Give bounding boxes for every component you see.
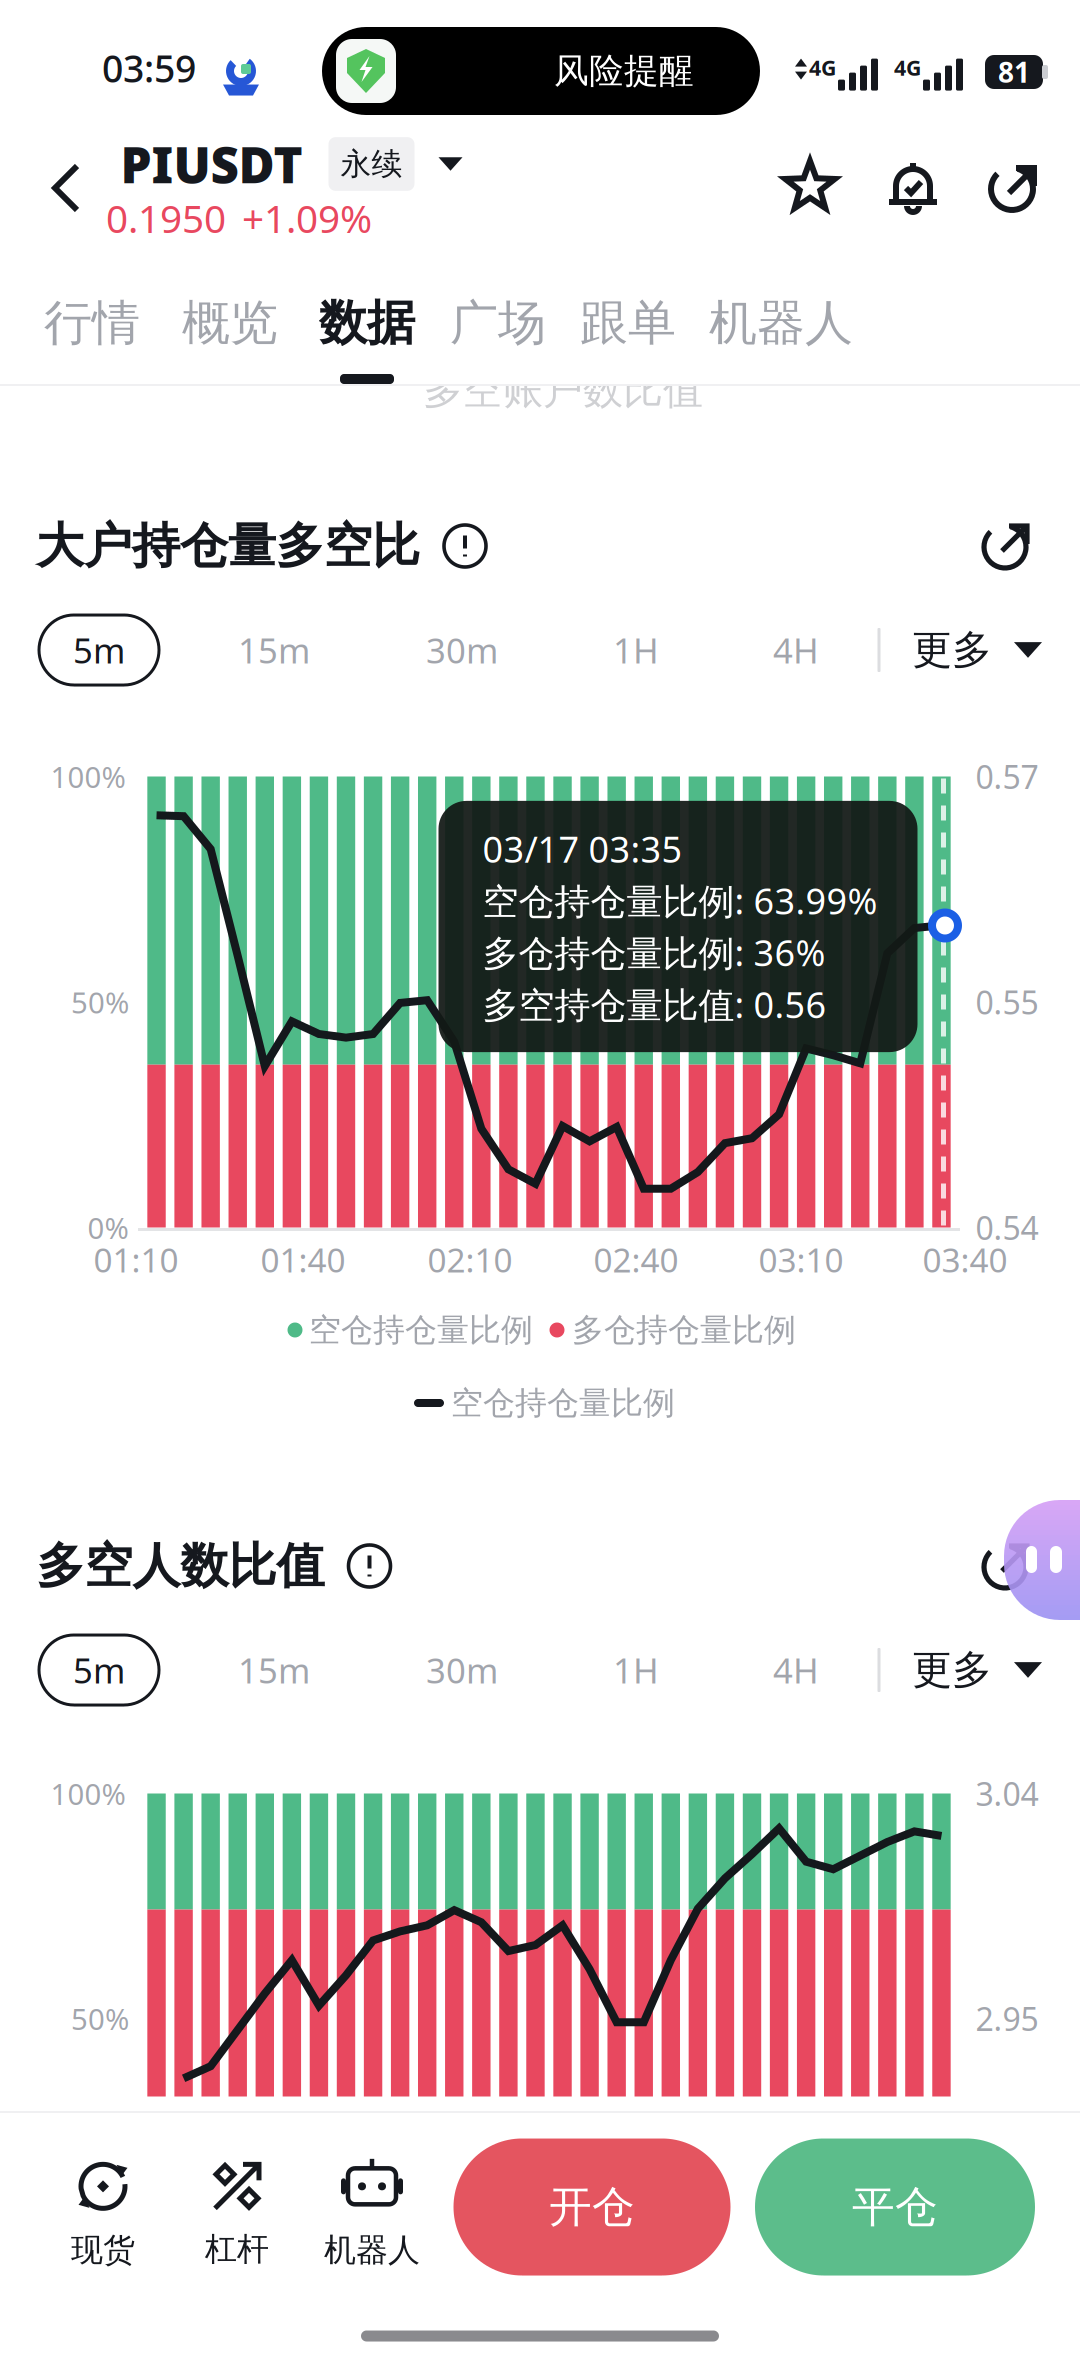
staticText: 15m <box>238 627 310 673</box>
staticText: 3.04 <box>975 1772 1038 1815</box>
staticText: 5m <box>73 1647 125 1693</box>
button[interactable]: 返回 <box>18 130 114 246</box>
staticText: 4H <box>773 1647 819 1693</box>
staticText: 多空持仓量比值: 0.56 <box>482 980 826 1028</box>
staticText: 机器人 <box>709 293 853 352</box>
button[interactable]: 机器人 <box>689 275 873 371</box>
staticText: 81 <box>998 53 1030 91</box>
button[interactable]: 悬浮助手 <box>1004 1500 1080 1620</box>
staticText: 4G <box>809 53 836 82</box>
staticText: 02:40 <box>593 1237 678 1282</box>
staticText: 概览 <box>182 293 278 352</box>
button[interactable]: 开仓 <box>453 2138 730 2275</box>
staticText: 大户持仓量多空比 <box>36 516 420 575</box>
staticText: 更多 <box>912 625 992 674</box>
staticText: 50% <box>71 1999 129 2038</box>
button[interactable]: 行情 <box>0 275 184 371</box>
button[interactable]: 5m <box>36 1632 162 1708</box>
button[interactable]: 4H <box>733 612 859 688</box>
staticText: 更多 <box>912 1645 992 1694</box>
button[interactable]: 分享图表 <box>972 510 1044 582</box>
button[interactable]: 收藏 <box>783 159 839 217</box>
button[interactable]: 1H <box>573 612 699 688</box>
staticText: 多空人数比值 <box>36 1536 324 1595</box>
button[interactable]: 平仓 <box>755 2138 1035 2275</box>
button[interactable]: 30m <box>399 1632 525 1708</box>
staticText: 0.1950 <box>106 192 226 244</box>
staticText: 机器人 <box>324 2230 420 2270</box>
staticText: 100% <box>50 1774 125 1813</box>
button[interactable]: 更多 <box>902 1632 1052 1708</box>
staticText: 现货 <box>71 2230 135 2270</box>
staticText: 多仓持仓量比例: 36% <box>482 928 825 976</box>
staticText: PIUSDT <box>120 131 302 197</box>
staticText: 4G <box>894 53 921 82</box>
button[interactable]: 广场 <box>406 275 590 371</box>
staticText: 15m <box>238 1647 310 1693</box>
button[interactable]: 概览 <box>138 275 322 371</box>
staticText: 03:59 <box>102 43 196 93</box>
button[interactable]: 跟单 <box>536 275 720 371</box>
staticText: 广场 <box>450 293 546 352</box>
staticText: 跟单 <box>580 293 676 352</box>
button[interactable]: 更多 <box>902 612 1052 688</box>
staticText: 0% <box>87 1208 128 1247</box>
staticText: 30m <box>426 627 498 673</box>
staticText: 4H <box>773 627 819 673</box>
staticText: 空仓持仓量比例: 63.99% <box>482 877 877 924</box>
staticText: 永续 <box>340 145 402 183</box>
staticText: 50% <box>71 982 129 1021</box>
staticText: 多空账户数比值 <box>423 365 703 414</box>
button[interactable]: 分享图表 <box>972 1530 1044 1602</box>
button[interactable]: 5m <box>36 612 162 688</box>
staticText: 2.95 <box>975 1997 1038 2040</box>
button[interactable]: 数据 <box>275 275 459 371</box>
button[interactable]: 1H <box>573 1632 699 1708</box>
button[interactable]: 杠杆 <box>167 2139 307 2289</box>
button[interactable]: 价格提醒 <box>887 159 939 217</box>
staticText: 1H <box>613 627 659 673</box>
button[interactable]: 15m <box>211 1632 337 1708</box>
staticText: 01:10 <box>93 1237 178 1282</box>
staticText: 5m <box>73 627 125 673</box>
staticText: 开仓 <box>549 2181 635 2233</box>
staticText: 02:10 <box>427 1237 512 1282</box>
button[interactable]: 现货 <box>33 2139 173 2289</box>
button[interactable]: 4H <box>733 1632 859 1708</box>
staticText: 行情 <box>44 293 140 352</box>
button[interactable]: 分享 <box>987 159 1043 217</box>
staticText: 数据 <box>319 293 415 352</box>
button[interactable]: 机器人 <box>302 2139 442 2289</box>
staticText: 03/17 03:35 <box>482 825 682 873</box>
button[interactable]: 15m <box>211 612 337 688</box>
staticText: 空仓持仓量比例 <box>451 1383 675 1423</box>
staticText: 空仓持仓量比例 <box>309 1310 533 1350</box>
staticText: 01:40 <box>260 1237 345 1282</box>
button[interactable]: 永续 <box>302 137 462 191</box>
staticText: 0.57 <box>975 755 1038 798</box>
staticText: 0.54 <box>975 1206 1038 1249</box>
staticText: 30m <box>426 1647 498 1693</box>
staticText: 杠杆 <box>205 2229 269 2269</box>
staticText: 03:10 <box>758 1237 843 1282</box>
staticText: +1.09% <box>242 192 372 244</box>
staticText: 多仓持仓量比例 <box>572 1310 796 1350</box>
staticText: 0.55 <box>975 981 1038 1023</box>
staticText: 平仓 <box>852 2181 938 2233</box>
staticText: 风险提醒 <box>554 50 694 92</box>
staticText: 1H <box>613 1647 659 1693</box>
staticText: 03:40 <box>922 1237 1007 1282</box>
button[interactable]: 30m <box>399 612 525 688</box>
staticText: 100% <box>50 757 125 796</box>
